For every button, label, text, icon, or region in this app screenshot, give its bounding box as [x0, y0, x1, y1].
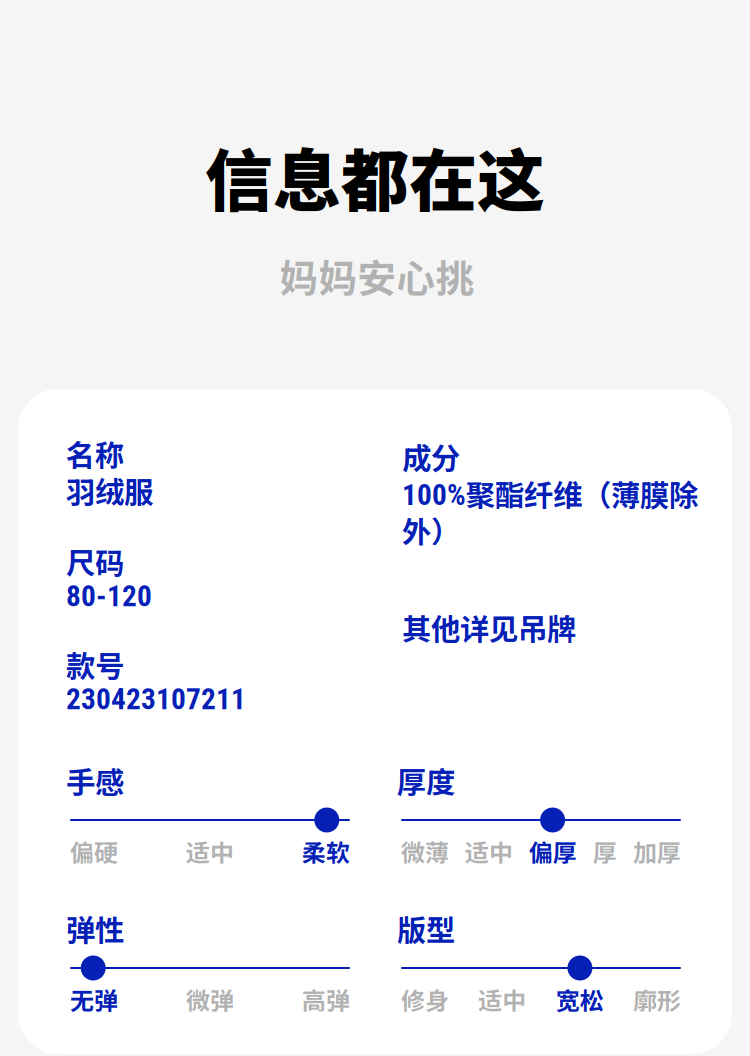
staticText: 柔软: [302, 834, 350, 869]
staticText: 230423107211: [66, 682, 246, 716]
staticText: 微薄: [401, 834, 449, 869]
staticText: 适中: [478, 982, 526, 1017]
button[interactable]: 柔软: [302, 834, 350, 869]
staticText: 手感: [66, 759, 124, 801]
button[interactable]: 加厚: [633, 834, 681, 869]
staticText: 100%聚酯纤维（薄膜除外）: [402, 472, 698, 551]
button[interactable]: 无弹: [70, 982, 118, 1017]
staticText: 加厚: [633, 834, 681, 869]
staticText: 偏厚: [529, 834, 577, 869]
staticText: 廓形: [633, 982, 681, 1017]
button[interactable]: 适中: [465, 834, 513, 869]
staticText: 微弹: [186, 982, 234, 1017]
staticText: 80-120: [66, 579, 152, 613]
button[interactable]: 偏厚: [529, 834, 577, 869]
button[interactable]: 适中: [186, 834, 234, 869]
button[interactable]: 微薄: [401, 834, 449, 869]
staticText: 宽松: [556, 982, 604, 1017]
staticText: 适中: [465, 834, 513, 869]
button[interactable]: 厚: [593, 834, 617, 869]
staticText: 信息都在这: [205, 127, 545, 225]
staticText: 款号: [66, 643, 124, 685]
staticText: 高弹: [302, 982, 350, 1017]
staticText: 偏硬: [70, 834, 118, 869]
staticText: 修身: [401, 982, 449, 1017]
staticText: 无弹: [70, 982, 118, 1017]
staticText: 尺码: [66, 540, 124, 582]
button[interactable]: 修身: [401, 982, 449, 1017]
staticText: 弹性: [66, 907, 124, 949]
button[interactable]: 高弹: [302, 982, 350, 1017]
staticText: 羽绒服: [66, 469, 153, 511]
staticText: 成分: [402, 435, 460, 477]
button[interactable]: 宽松: [556, 982, 604, 1017]
staticText: 妈妈安心挑: [279, 248, 474, 304]
staticText: 适中: [186, 834, 234, 869]
staticText: 版型: [397, 907, 455, 949]
staticText: 厚: [593, 834, 617, 869]
button[interactable]: 偏硬: [70, 834, 118, 869]
button[interactable]: 廓形: [633, 982, 681, 1017]
staticText: 厚度: [397, 759, 455, 801]
button[interactable]: 微弹: [186, 982, 234, 1017]
staticText: 其他详见吊牌: [402, 606, 576, 648]
staticText: 名称: [66, 432, 124, 474]
button[interactable]: 适中: [478, 982, 526, 1017]
